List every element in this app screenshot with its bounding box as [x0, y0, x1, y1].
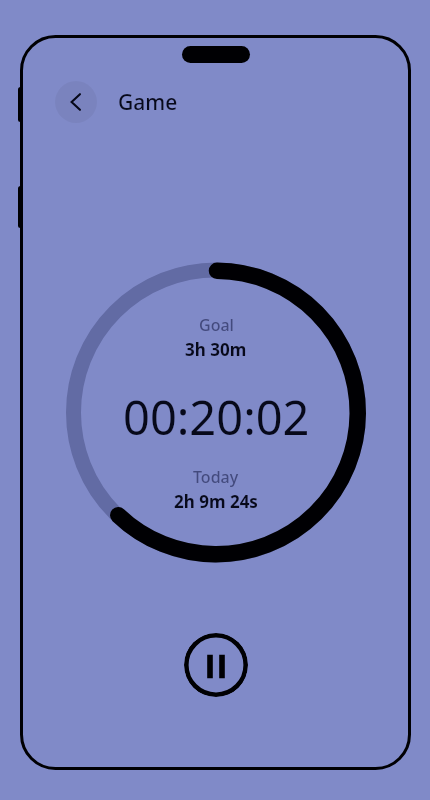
staticText: Goal [199, 314, 234, 336]
staticText: 3h 30m [185, 338, 247, 361]
button[interactable]: Pause [184, 633, 248, 697]
staticText: 2h 9m 24s [174, 490, 258, 513]
button[interactable]: Back [55, 81, 97, 123]
staticText: Today [193, 466, 239, 488]
staticText: Game [118, 88, 178, 117]
staticText: 00:20:02 [123, 385, 310, 449]
